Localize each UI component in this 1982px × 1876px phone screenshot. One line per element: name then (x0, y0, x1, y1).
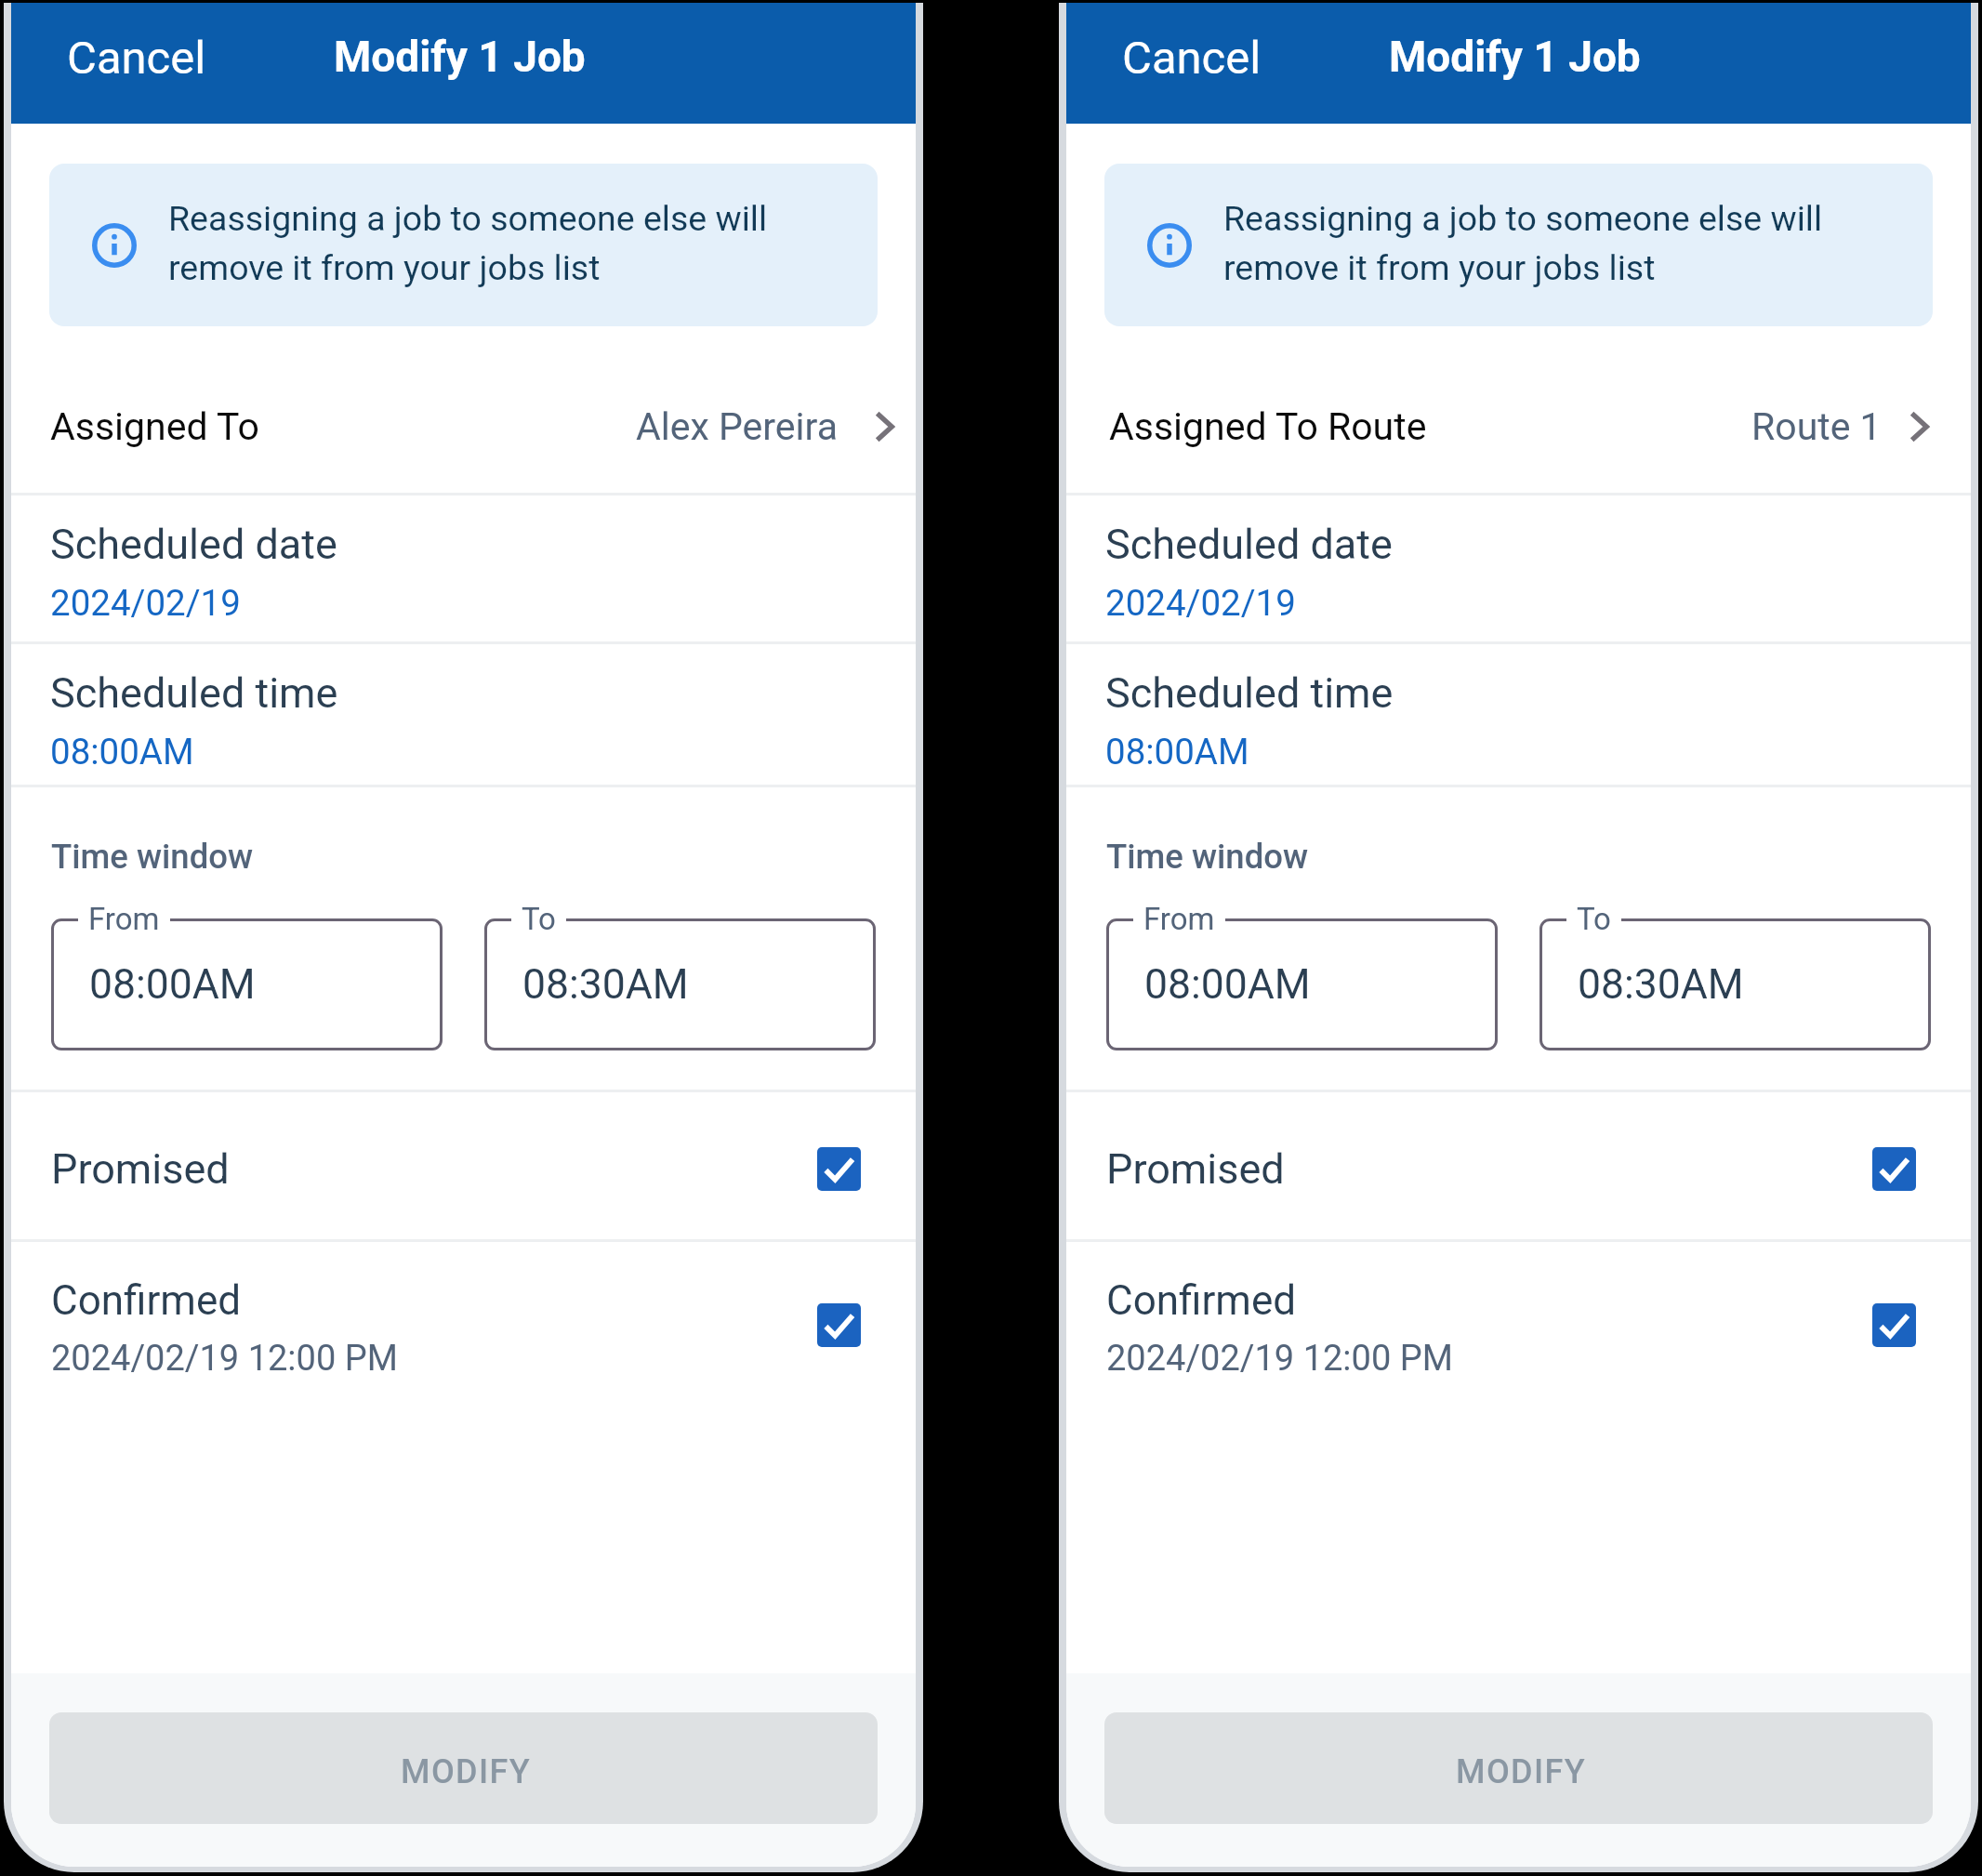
staticText: Alex Pereira (636, 404, 838, 449)
staticText: Confirmed (1106, 1276, 1297, 1325)
button[interactable] (1539, 918, 1931, 1050)
staticText: Time window (1106, 837, 1309, 877)
button[interactable] (484, 918, 876, 1050)
button[interactable]: Scheduled date (1066, 495, 1971, 641)
staticText: Cancel (1122, 32, 1262, 85)
staticText: Modify 1 Job (1389, 32, 1641, 82)
staticText: 08:00AM (1144, 960, 1311, 1009)
staticText: MODIFY (401, 1752, 532, 1791)
staticText: Assigned To (50, 404, 259, 449)
button[interactable]: MODIFY (1104, 1712, 1933, 1824)
staticText: 08:30AM (1578, 960, 1744, 1009)
staticText: Modify 1 Job (334, 32, 586, 82)
button[interactable]: Cancel (1103, 19, 1280, 98)
button[interactable]: Promised (11, 1092, 916, 1239)
staticText: 08:00AM (89, 960, 256, 1009)
staticText: Confirmed (51, 1276, 242, 1325)
button[interactable]: Assigned To (11, 326, 916, 493)
staticText: Time window (51, 837, 254, 877)
button[interactable]: Confirmed (1066, 1242, 1971, 1433)
staticText: Promised (51, 1144, 230, 1194)
button[interactable]: Scheduled time (11, 644, 916, 785)
button[interactable]: Scheduled date (11, 495, 916, 641)
other: Open selector (1909, 411, 1929, 443)
button[interactable]: Confirmed checkbox (817, 1303, 861, 1347)
button[interactable]: MODIFY (49, 1712, 878, 1824)
button[interactable]: Promised checkbox (817, 1147, 861, 1191)
staticText: Scheduled time (1105, 668, 1394, 718)
staticText: To (1577, 901, 1611, 937)
staticText: Scheduled date (50, 520, 337, 569)
staticText: 2024/02/19 (50, 582, 241, 624)
button[interactable]: Cancel (48, 19, 225, 98)
button[interactable] (51, 918, 443, 1050)
staticText: Scheduled date (1105, 520, 1393, 569)
staticText: 2024/02/19 (1105, 582, 1296, 624)
staticText: 2024/02/19 12:00 PM (1106, 1338, 1453, 1380)
staticText: From (1143, 901, 1215, 937)
staticText: Reassigning a job to someone else will r… (168, 198, 855, 288)
staticText: 2024/02/19 12:00 PM (51, 1338, 398, 1380)
staticText: Route 1 (1751, 404, 1882, 449)
button[interactable] (1106, 918, 1498, 1050)
button[interactable]: Confirmed (11, 1242, 916, 1433)
button[interactable]: Scheduled time (1066, 644, 1971, 785)
button[interactable]: Promised checkbox (1872, 1147, 1916, 1191)
staticText: 08:30AM (522, 960, 689, 1009)
staticText: Scheduled time (50, 668, 338, 718)
staticText: 08:00AM (50, 731, 194, 773)
staticText: From (88, 901, 160, 937)
staticText: MODIFY (1456, 1752, 1587, 1791)
staticText: Reassigning a job to someone else will r… (1223, 198, 1910, 288)
button[interactable]: Confirmed checkbox (1872, 1303, 1916, 1347)
staticText: 08:00AM (1105, 731, 1249, 773)
other: Open selector (875, 411, 894, 443)
staticText: Cancel (67, 32, 206, 85)
staticText: Promised (1106, 1144, 1285, 1194)
button[interactable]: Promised (1066, 1092, 1971, 1239)
staticText: To (522, 901, 556, 937)
button[interactable]: Assigned To Route (1066, 326, 1971, 493)
staticText: Assigned To Route (1109, 404, 1427, 449)
